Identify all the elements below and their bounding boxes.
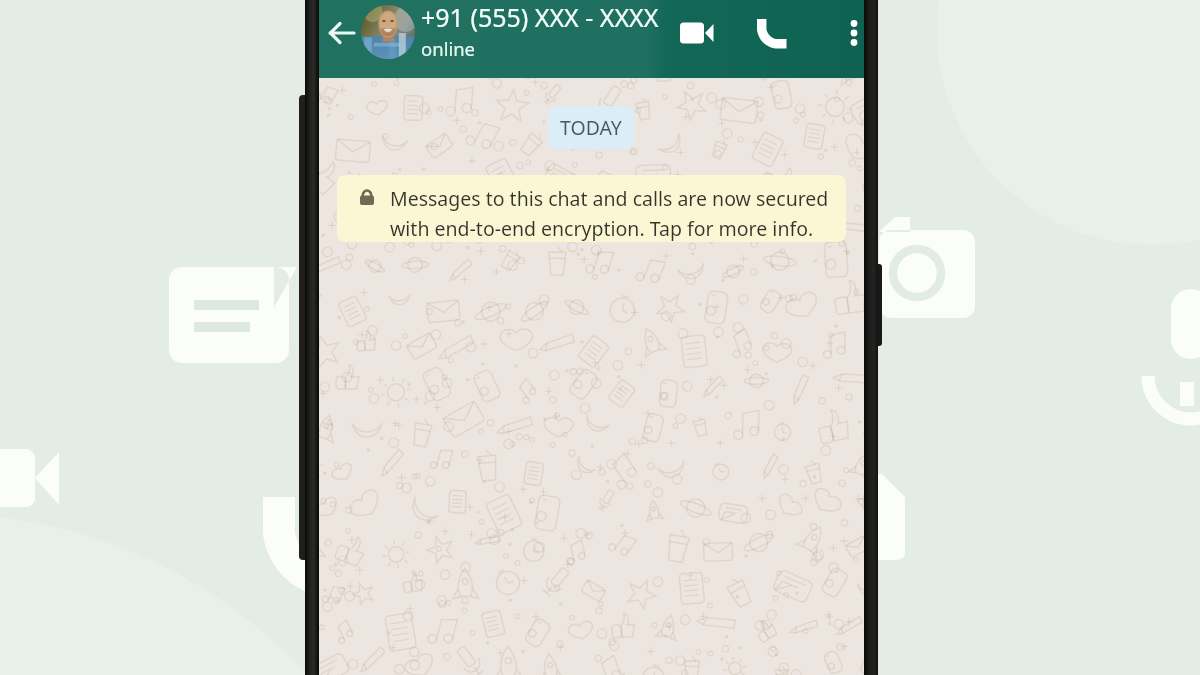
button[interactable]: Voice call <box>750 12 793 55</box>
button[interactable]: Messages to this chat and calls are now … <box>337 175 846 242</box>
staticText: with end-to-end encryption. Tap for more… <box>390 215 814 242</box>
button[interactable]: More options <box>833 12 864 54</box>
button[interactable]: Back <box>323 14 361 52</box>
button[interactable]: Video call <box>675 11 719 55</box>
button[interactable]: Profile photo <box>361 5 415 59</box>
staticText: Messages to this chat and calls are now … <box>390 185 829 212</box>
button[interactable]: TODAY <box>548 106 634 149</box>
staticText: online <box>421 36 476 61</box>
staticText: +91 (555) XXX - XXXX <box>421 0 659 34</box>
staticText: TODAY <box>560 114 622 141</box>
